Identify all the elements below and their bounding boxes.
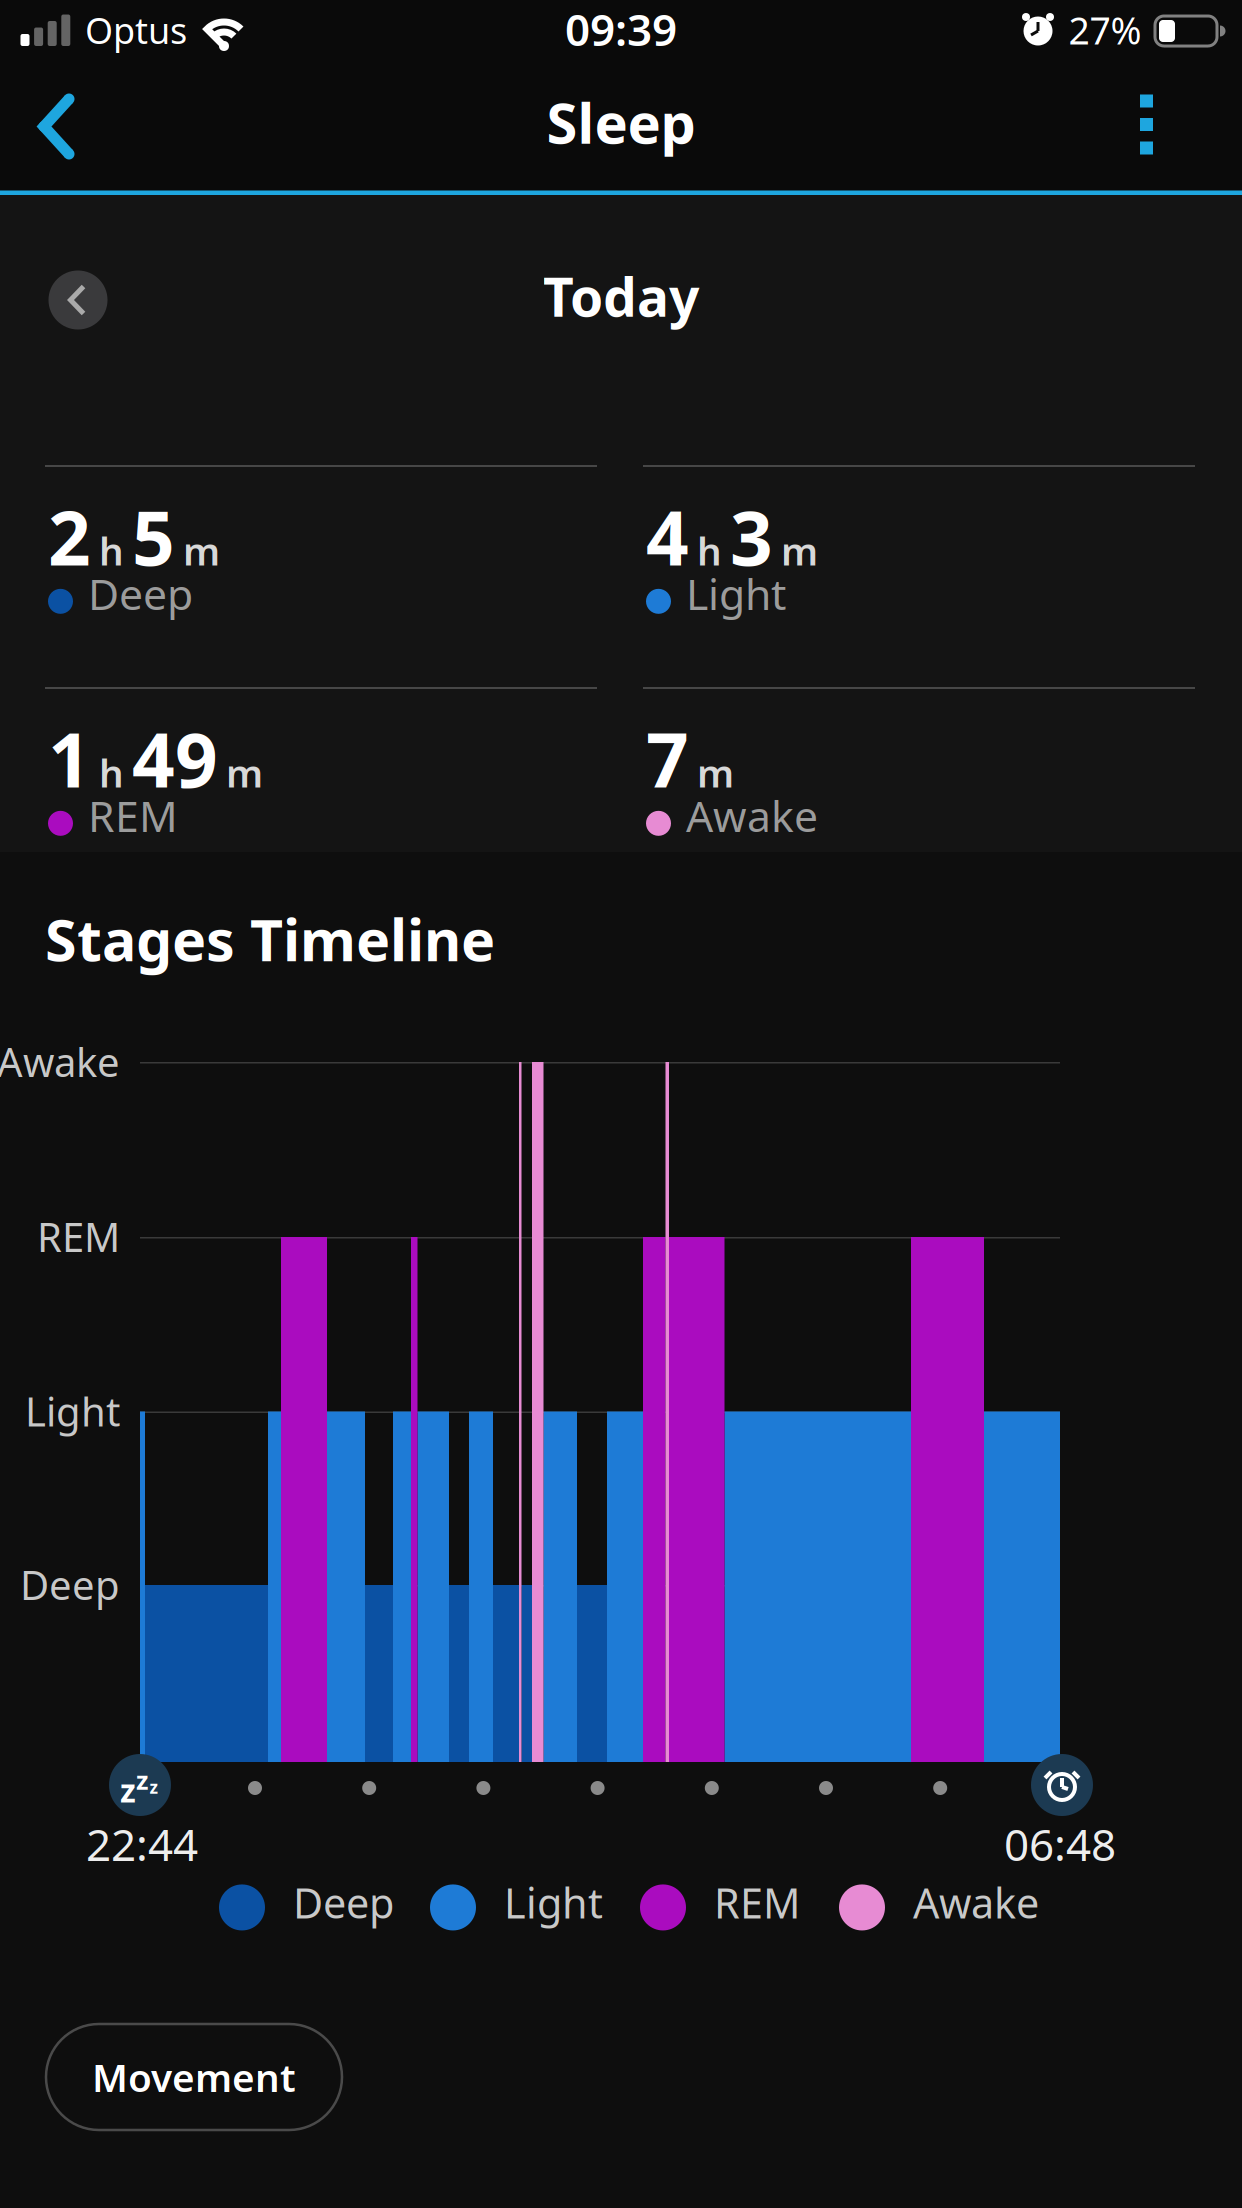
staticText: 4 [646, 487, 689, 586]
staticText: z [136, 1763, 148, 1797]
staticText: h [99, 747, 124, 798]
staticText: REM [88, 787, 178, 844]
staticText: Light [686, 565, 786, 622]
staticText: z [120, 1769, 136, 1811]
staticText: 06:48 [1004, 1815, 1116, 1873]
button[interactable]: Back [29, 88, 89, 166]
staticText: Deep [20, 1558, 120, 1611]
staticText: 27% [1068, 5, 1141, 55]
button[interactable]: Previous day [48, 270, 107, 329]
staticText: Optus [85, 6, 187, 54]
staticText: 5 [132, 487, 175, 586]
staticText: 09:39 [565, 0, 677, 58]
staticText: Deep [293, 1875, 394, 1930]
staticText: Awake [686, 787, 818, 844]
staticText: Movement [92, 2051, 296, 2103]
staticText: m [226, 747, 263, 798]
staticText: Today [543, 261, 699, 331]
staticText: m [183, 525, 220, 576]
staticText: 2 [48, 487, 91, 586]
staticText: REM [714, 1875, 800, 1930]
staticText: 3 [730, 487, 773, 586]
staticText: m [781, 525, 818, 576]
button[interactable]: Movement [46, 2024, 342, 2130]
staticText: 49 [132, 709, 218, 808]
staticText: Stages Timeline [45, 901, 495, 977]
staticText: Light [25, 1384, 120, 1438]
staticText: Light [504, 1875, 603, 1930]
staticText: z [149, 1775, 158, 1798]
staticText: m [697, 747, 734, 798]
staticText: 1 [48, 709, 91, 808]
staticText: Deep [88, 565, 193, 622]
staticText: Awake [0, 1035, 120, 1088]
staticText: h [99, 525, 124, 576]
staticText: 7 [646, 709, 689, 808]
staticText: 22:44 [86, 1815, 198, 1873]
staticText: REM [37, 1210, 120, 1263]
staticText: Awake [913, 1875, 1039, 1930]
button[interactable]: More options [1121, 84, 1171, 164]
staticText: h [697, 525, 722, 576]
staticText: Sleep [546, 85, 695, 159]
